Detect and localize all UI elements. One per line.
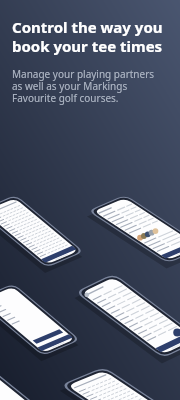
staticText: Manage your playing partners as well as … — [12, 67, 155, 105]
staticText: Control the way you book your tee times — [12, 17, 163, 56]
